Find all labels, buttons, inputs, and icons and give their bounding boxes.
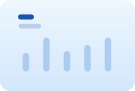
button[interactable]: Analytics summary <box>0 0 135 91</box>
